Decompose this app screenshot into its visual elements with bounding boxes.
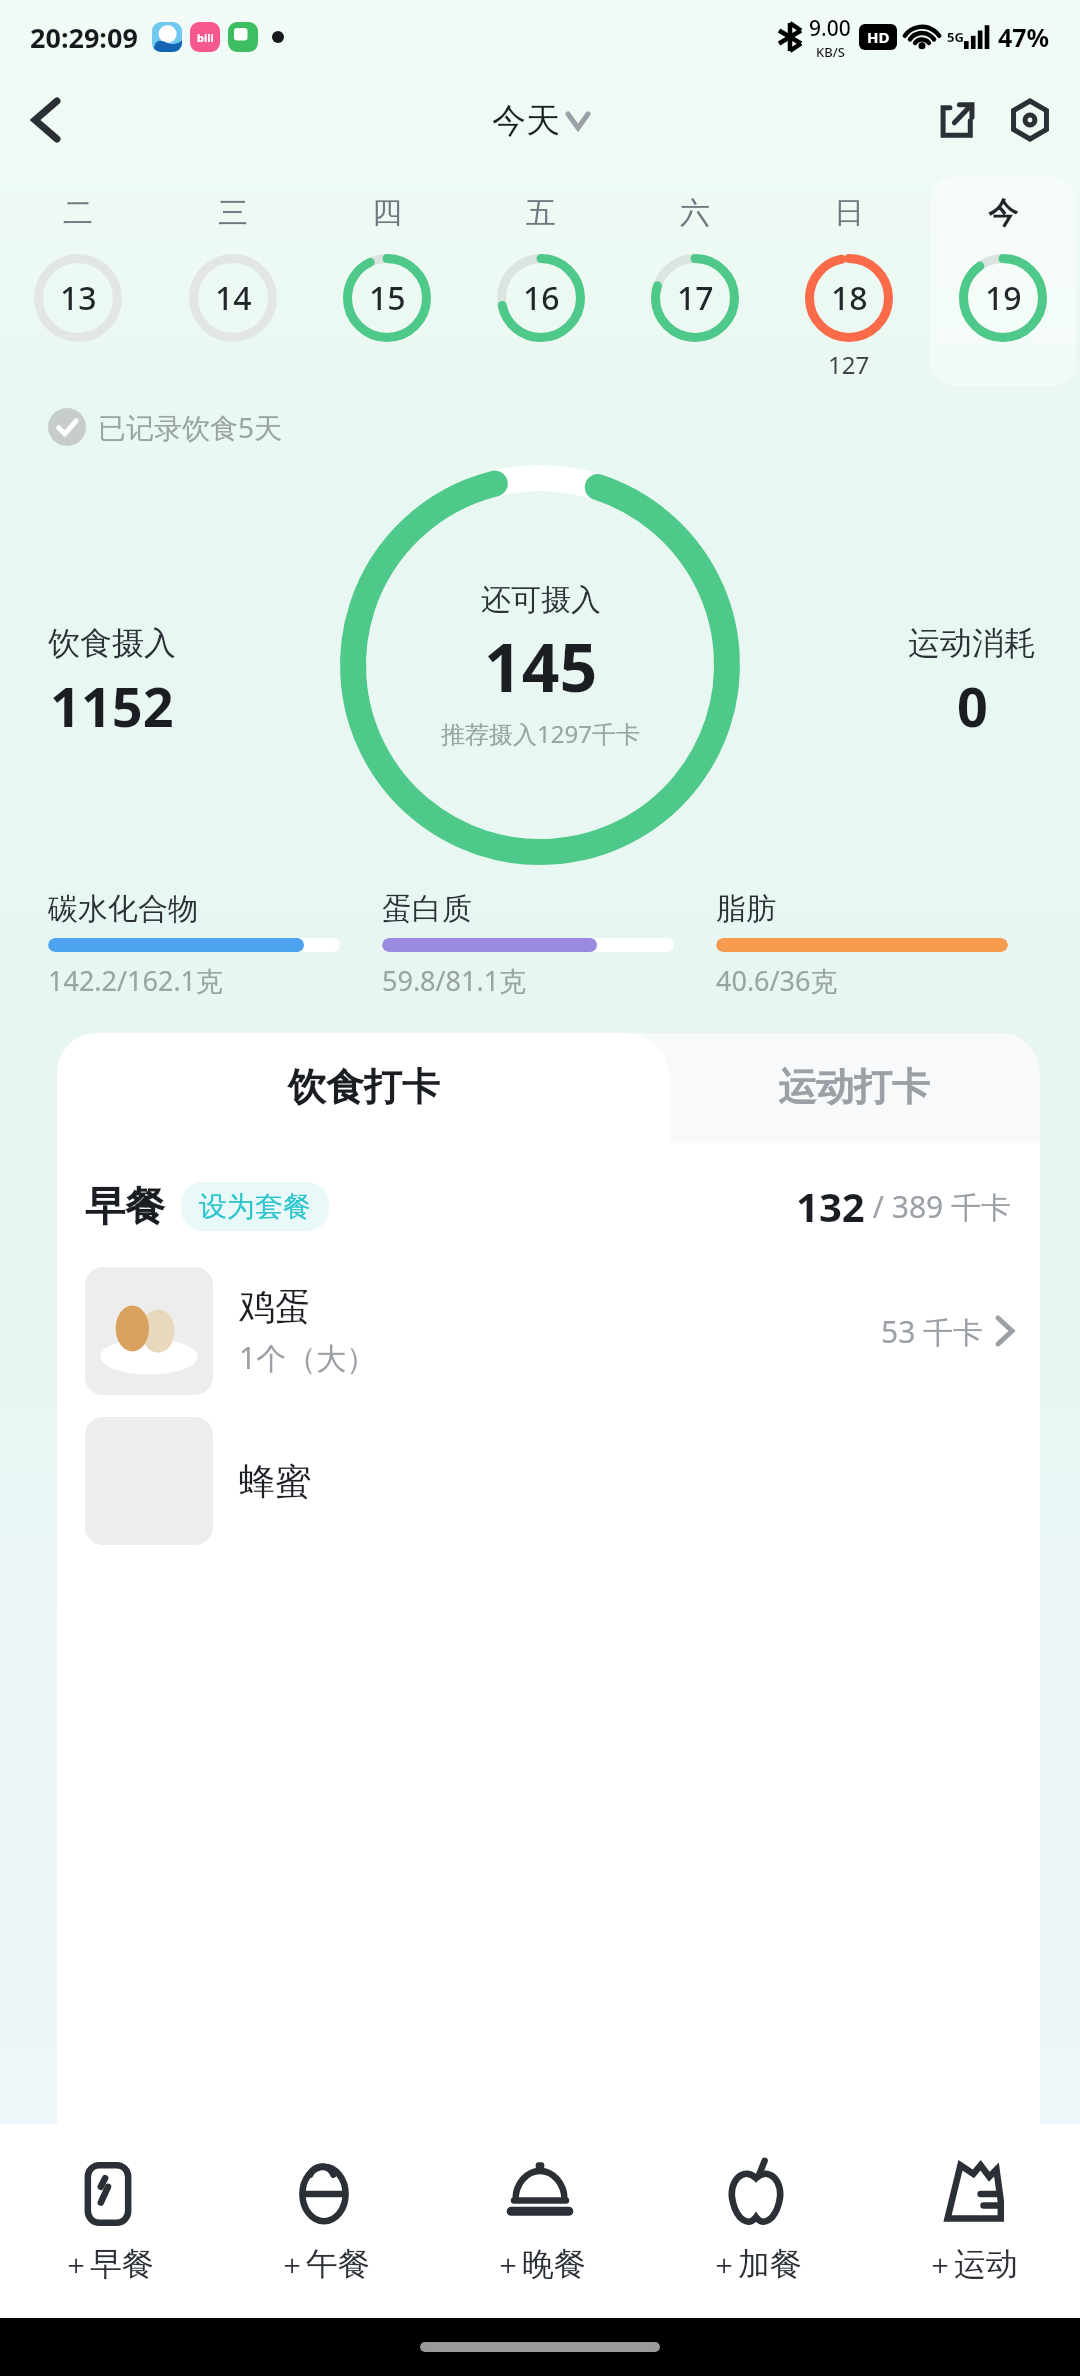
staticText: 运动打卡 xyxy=(778,1063,930,1111)
staticText: 六 xyxy=(680,194,710,232)
staticText: 5G xyxy=(947,28,964,46)
staticText: / 389 千卡 xyxy=(865,1186,1012,1227)
button[interactable]: 今天 xyxy=(492,99,588,142)
staticText: 53 千卡 xyxy=(881,1311,984,1352)
button[interactable]: 饮食打卡 xyxy=(57,1033,670,1143)
button[interactable]: 二 xyxy=(4,176,151,386)
staticText: 13 xyxy=(60,276,97,320)
staticText: 今 xyxy=(988,194,1018,232)
staticText: ＋ xyxy=(710,2247,738,2282)
staticText: 运动 xyxy=(954,2244,1018,2284)
staticText: 鸡蛋 xyxy=(239,1284,311,1329)
staticText: 饮食摄入 xyxy=(48,623,176,663)
button[interactable]: 日 xyxy=(776,176,922,386)
staticText: 三 xyxy=(218,194,248,232)
staticText: 碳水化合物 xyxy=(48,890,198,928)
staticText: 四 xyxy=(372,194,402,232)
staticText: 已记录饮食5天 xyxy=(98,408,283,446)
staticText: HD xyxy=(867,27,890,47)
staticText: ＋ xyxy=(62,2247,90,2282)
button[interactable]: 早餐 xyxy=(85,1179,1012,1233)
staticText: 14 xyxy=(215,276,252,320)
staticText: 142.2/162.1克 xyxy=(48,962,224,999)
staticText: 推荐摄入1297千卡 xyxy=(441,717,640,750)
staticText: 脂肪 xyxy=(716,890,776,928)
staticText: 1个（大） xyxy=(239,1337,377,1378)
staticText: KB/S xyxy=(816,43,845,61)
staticText: 127 xyxy=(828,348,870,381)
staticText: 47% xyxy=(998,20,1050,54)
staticText: 五 xyxy=(526,194,556,232)
staticText: 早餐 xyxy=(90,2244,154,2284)
staticText: 设为套餐 xyxy=(199,1189,311,1224)
staticText: 18 xyxy=(831,276,868,320)
staticText: 17 xyxy=(677,276,714,320)
staticText: 加餐 xyxy=(738,2244,802,2284)
button[interactable]: Back xyxy=(14,88,78,152)
button[interactable]: 鸡蛋 xyxy=(85,1267,1012,1395)
staticText: 晚餐 xyxy=(522,2244,586,2284)
staticText: ＋ xyxy=(494,2247,522,2282)
staticText: 15 xyxy=(369,276,406,320)
staticText: 运动消耗 xyxy=(908,623,1036,663)
staticText: 59.8/81.1克 xyxy=(382,962,527,999)
button[interactable]: 四 xyxy=(314,176,460,386)
staticText: 9.00 xyxy=(809,14,851,43)
staticText: 132 xyxy=(796,1179,865,1233)
staticText: 1152 xyxy=(50,669,174,743)
staticText: 蜂蜜 xyxy=(239,1459,311,1504)
staticText: 今天 xyxy=(492,99,560,142)
staticText: 还可摄入 xyxy=(481,581,601,619)
staticText: 午餐 xyxy=(306,2244,370,2284)
button[interactable]: 六 xyxy=(622,176,768,386)
staticText: ＋ xyxy=(278,2247,306,2282)
button[interactable]: 运动打卡 xyxy=(648,1033,1080,1143)
button[interactable]: ＋ xyxy=(864,2124,1080,2318)
staticText: bili xyxy=(197,30,214,45)
button[interactable]: Share xyxy=(924,88,988,152)
button[interactable]: ＋ xyxy=(432,2124,648,2318)
staticText: 蛋白质 xyxy=(382,890,472,928)
staticText: 145 xyxy=(484,621,598,711)
staticText: 20:29:09 xyxy=(30,19,138,56)
button[interactable]: ＋ xyxy=(0,2124,216,2318)
staticText: 19 xyxy=(985,276,1022,320)
staticText: 日 xyxy=(834,194,864,232)
staticText: 16 xyxy=(523,276,560,320)
staticText: 饮食打卡 xyxy=(288,1063,440,1111)
button[interactable]: ＋ xyxy=(216,2124,432,2318)
staticText: 二 xyxy=(63,194,93,232)
button[interactable]: Settings xyxy=(998,88,1062,152)
button[interactable]: 今 xyxy=(930,176,1076,386)
staticText: ＋ xyxy=(926,2247,954,2282)
staticText: 早餐 xyxy=(85,1181,165,1231)
staticText: 40.6/36克 xyxy=(716,962,838,999)
button[interactable]: 设为套餐 xyxy=(199,1189,311,1224)
staticText: 0 xyxy=(957,669,988,743)
button[interactable]: ＋ xyxy=(648,2124,864,2318)
button[interactable]: 蜂蜜 xyxy=(85,1417,1012,1545)
button[interactable]: 五 xyxy=(468,176,614,386)
button[interactable]: 三 xyxy=(159,176,306,386)
